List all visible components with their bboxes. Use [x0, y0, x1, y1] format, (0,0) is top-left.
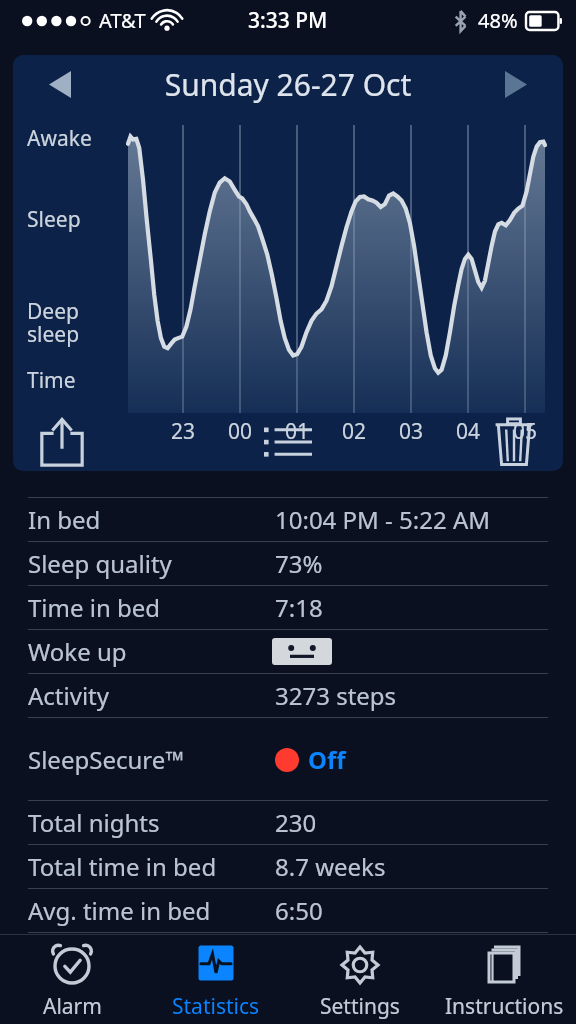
staticText: 3273 steps: [275, 679, 397, 712]
staticText: 6:50: [275, 894, 323, 927]
button[interactable]: Next day: [469, 55, 563, 113]
staticText: Total time in bed: [28, 850, 217, 883]
staticText: 01: [285, 417, 310, 446]
staticText: 10:04 PM - 5:22 AM: [275, 503, 491, 536]
staticText: Deep sleep: [27, 297, 80, 348]
staticText: Sleep: [27, 205, 81, 234]
staticText: Alarm: [43, 992, 102, 1021]
button[interactable]: In bed: [0, 498, 576, 541]
staticText: 8.7 weeks: [275, 850, 386, 883]
button[interactable]: List: [258, 418, 318, 466]
button[interactable]: Statistics: [144, 935, 288, 1024]
staticText: 04: [456, 417, 481, 446]
staticText: 3:33 PM: [248, 6, 328, 35]
button[interactable]: Delete: [487, 415, 541, 469]
staticText: Avg. time in bed: [28, 894, 211, 927]
staticText: Woke up: [28, 635, 127, 668]
staticText: 23: [171, 417, 196, 446]
staticText: Time in bed: [28, 591, 161, 624]
button[interactable]: Share: [35, 415, 89, 469]
staticText: Sunday 26-27 Oct: [107, 64, 469, 105]
staticText: 73%: [275, 547, 323, 580]
button[interactable]: Total nights: [0, 801, 576, 844]
staticText: In bed: [28, 503, 101, 536]
button[interactable]: SleepSecure™: [0, 718, 576, 800]
staticText: 48%: [478, 7, 518, 34]
staticText: Time: [27, 366, 76, 395]
staticText: 03: [399, 417, 424, 446]
staticText: 7:18: [275, 591, 323, 624]
staticText: Total nights: [28, 806, 160, 839]
staticText: Sleep quality: [28, 547, 172, 580]
staticText: Instructions: [445, 992, 564, 1021]
button[interactable]: Sleep quality: [0, 542, 576, 585]
button[interactable]: Total time in bed: [0, 845, 576, 888]
staticText: Settings: [320, 992, 400, 1021]
button[interactable]: Time in bed: [0, 586, 576, 629]
button[interactable]: Alarm: [0, 935, 144, 1024]
staticText: Activity: [28, 679, 109, 712]
button[interactable]: Previous day: [13, 55, 107, 113]
staticText: 02: [342, 417, 367, 446]
staticText: Statistics: [172, 992, 260, 1021]
button[interactable]: Avg. time in bed: [0, 889, 576, 932]
button[interactable]: Woke up: [0, 630, 576, 673]
button[interactable]: Settings: [288, 935, 432, 1024]
button[interactable]: Instructions: [432, 935, 576, 1024]
button[interactable]: Activity: [0, 674, 576, 717]
staticText: 00: [228, 417, 253, 446]
staticText: AT&T: [99, 7, 146, 34]
staticText: 05: [513, 417, 538, 446]
staticText: Awake: [27, 124, 92, 153]
staticText: SleepSecure™: [28, 743, 184, 776]
staticText: Off: [308, 743, 346, 776]
staticText: 230: [275, 806, 317, 839]
